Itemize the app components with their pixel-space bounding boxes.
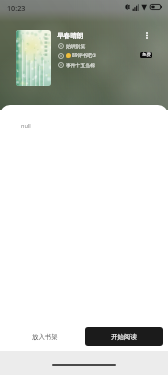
button[interactable]: 免费 xyxy=(140,52,152,58)
staticText: 始哄刮笑 xyxy=(66,43,86,49)
button[interactable]: More options xyxy=(139,28,155,42)
staticText: 早春晴朗 xyxy=(57,32,84,40)
staticText: 事件十五当棉 xyxy=(66,62,95,68)
button[interactable]: 开始阅读 xyxy=(85,327,163,346)
staticText: null xyxy=(21,122,31,130)
staticText: 开始阅读 xyxy=(111,333,137,341)
staticText: 放入书架 xyxy=(32,333,58,341)
staticText: 免费 xyxy=(142,52,151,58)
button[interactable]: 放入书架 xyxy=(6,327,84,346)
staticText: 89评书吧① xyxy=(72,52,97,59)
staticText: 10:23 xyxy=(7,3,26,13)
